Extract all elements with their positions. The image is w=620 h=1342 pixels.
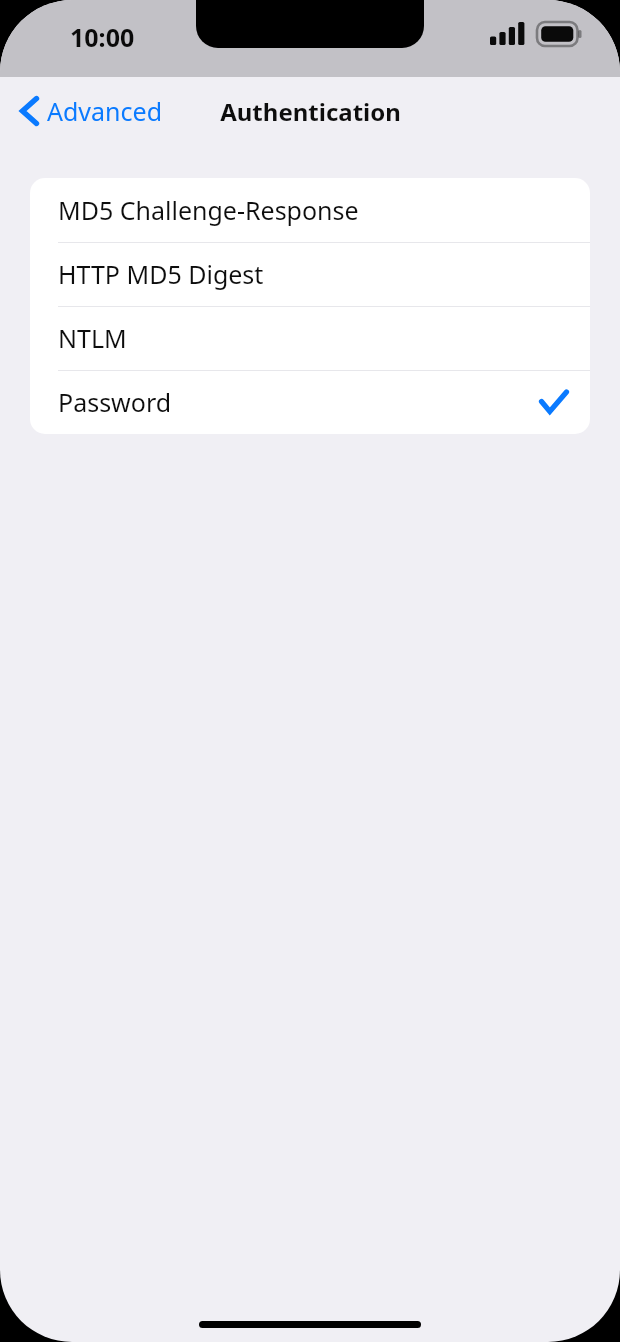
staticText: Authentication bbox=[220, 95, 401, 128]
staticText: NTLM bbox=[58, 321, 568, 355]
staticText: MD5 Challenge-Response bbox=[58, 193, 568, 227]
button[interactable]: HTTP MD5 Digest bbox=[30, 242, 590, 306]
staticText: Advanced bbox=[47, 94, 163, 128]
button[interactable]: NTLM bbox=[30, 306, 590, 370]
button[interactable]: Password bbox=[30, 370, 590, 434]
staticText: HTTP MD5 Digest bbox=[58, 257, 568, 291]
button[interactable]: MD5 Challenge-Response bbox=[30, 178, 590, 242]
staticText: 10:00 bbox=[70, 20, 135, 54]
other: Selected bbox=[540, 390, 568, 414]
staticText: Password bbox=[58, 385, 540, 419]
button[interactable]: Advanced bbox=[0, 77, 177, 145]
